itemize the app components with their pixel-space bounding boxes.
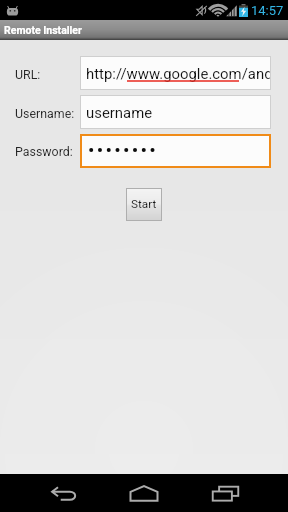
staticText: Password: xyxy=(15,144,73,159)
staticText: http://www.google.com/android xyxy=(86,65,271,82)
staticText: 14:57 xyxy=(251,3,284,18)
button[interactable]: Back xyxy=(38,474,90,512)
staticText: URL: xyxy=(15,67,41,82)
button[interactable] xyxy=(80,134,271,168)
button[interactable]: http://www.google.com/android xyxy=(80,56,271,90)
button[interactable]: Start xyxy=(126,188,162,221)
button[interactable]: username xyxy=(80,95,271,129)
staticText: Start xyxy=(131,197,157,211)
staticText: Remote Installer xyxy=(4,24,82,36)
button[interactable]: Recent apps xyxy=(199,474,251,512)
button[interactable]: Home xyxy=(118,474,170,512)
staticText: username xyxy=(86,104,153,121)
staticText: Username: xyxy=(15,106,75,121)
